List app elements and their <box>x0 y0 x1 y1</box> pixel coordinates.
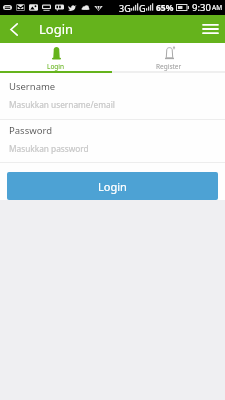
staticText: Login <box>98 179 127 194</box>
button[interactable]: Back <box>0 15 28 43</box>
button[interactable]: Menu <box>195 15 225 43</box>
staticText: G <box>139 2 146 14</box>
staticText: AM <box>212 3 223 12</box>
staticText: Login <box>47 62 65 71</box>
button[interactable]: Login <box>0 43 112 73</box>
staticText: Password <box>9 124 52 137</box>
button[interactable]: Password <box>0 120 225 162</box>
staticText: Masukkan password <box>9 143 89 154</box>
staticText: Login <box>39 20 74 38</box>
button[interactable]: Login <box>7 172 218 200</box>
staticText: Register <box>156 62 182 71</box>
staticText: Masukkan username/email <box>9 99 115 110</box>
button[interactable]: Username <box>0 76 225 119</box>
staticText: 9:30 <box>192 1 211 14</box>
button[interactable]: Register <box>112 43 225 73</box>
staticText: 3G <box>119 2 131 14</box>
staticText: Username <box>9 80 56 93</box>
staticText: 65% <box>156 2 174 14</box>
